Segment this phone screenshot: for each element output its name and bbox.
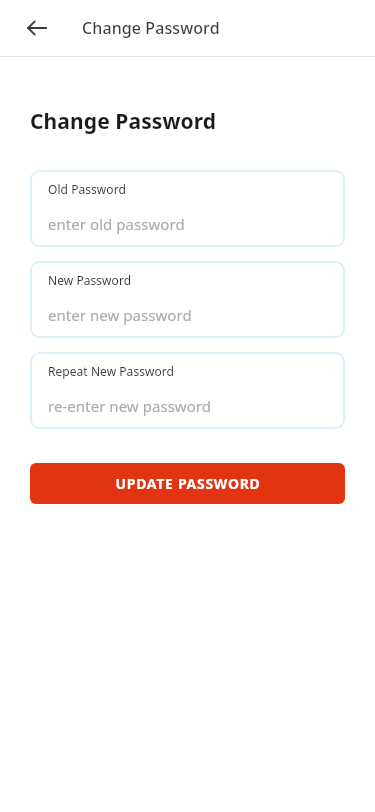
- button[interactable]: Old Password: [30, 170, 345, 247]
- staticText: Change Password: [30, 107, 217, 136]
- staticText: enter old password: [48, 214, 185, 234]
- staticText: UPDATE PASSWORD: [115, 474, 261, 493]
- button[interactable]: New Password: [30, 261, 345, 338]
- button[interactable]: Repeat New Password: [30, 352, 345, 429]
- staticText: enter new password: [48, 305, 192, 325]
- staticText: re-enter new password: [48, 396, 212, 416]
- button[interactable]: UPDATE PASSWORD: [30, 463, 345, 504]
- staticText: Old Password: [48, 181, 126, 197]
- staticText: Repeat New Password: [48, 363, 174, 379]
- staticText: Change Password: [82, 17, 220, 39]
- button[interactable]: Back: [16, 7, 58, 49]
- staticText: New Password: [48, 272, 132, 288]
